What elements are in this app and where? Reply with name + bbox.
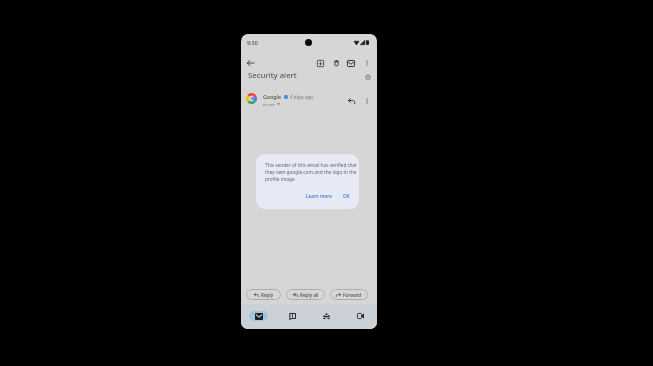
staticText: Security alert <box>248 70 297 81</box>
button[interactable]: Meet <box>343 304 377 329</box>
staticText: 9:30 <box>247 39 258 46</box>
staticText: Forward <box>343 292 362 298</box>
button[interactable]: Reply <box>345 94 358 107</box>
button[interactable]: Spaces <box>309 304 343 329</box>
staticText: 4 days ago <box>290 94 314 100</box>
button[interactable]: Mail <box>241 304 275 329</box>
staticText: to me <box>263 101 275 107</box>
button[interactable]: Mark as unread <box>344 56 358 70</box>
staticText: Google <box>263 93 282 100</box>
button[interactable]: More options <box>360 56 374 70</box>
button[interactable]: Forward <box>330 289 368 300</box>
button[interactable]: Back <box>243 56 257 70</box>
button[interactable]: Delete <box>329 56 343 70</box>
button[interactable]: Star <box>361 70 374 83</box>
staticText: This sender of this email has verified t… <box>265 162 359 183</box>
staticText: Learn more <box>306 193 332 199</box>
button[interactable]: OK <box>341 191 352 201</box>
button[interactable]: Learn more <box>304 191 334 201</box>
button[interactable]: Reply <box>246 289 281 300</box>
button[interactable]: Chat <box>275 304 309 329</box>
staticText: OK <box>343 193 350 199</box>
staticText: Reply <box>261 292 274 298</box>
button[interactable]: Reply all <box>286 289 325 300</box>
button[interactable]: More options for message <box>360 94 373 107</box>
staticText: Reply all <box>300 292 319 298</box>
button[interactable]: Archive <box>313 56 327 70</box>
